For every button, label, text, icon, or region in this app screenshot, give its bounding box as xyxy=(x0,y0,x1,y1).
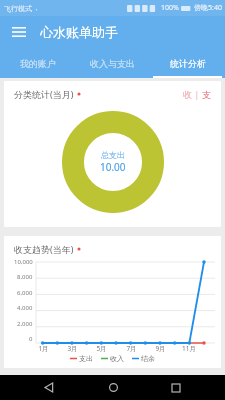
button[interactable]: 我的账户 xyxy=(0,48,75,78)
staticText: | xyxy=(192,88,202,100)
button[interactable]: Back xyxy=(34,375,64,400)
staticText: 2,000 xyxy=(17,320,33,328)
staticText: 1月 xyxy=(38,344,49,353)
staticText: 分类统计(当月) xyxy=(14,88,74,100)
staticText: 我的账户 xyxy=(20,58,56,69)
staticText: 总支出 xyxy=(101,150,125,160)
staticText: 7月 xyxy=(126,344,137,353)
staticText: 支 xyxy=(202,89,211,100)
staticText: 10.00 xyxy=(100,160,126,174)
staticText: 收支趋势(当年) xyxy=(14,243,74,255)
staticText: 心水账单助手 xyxy=(40,24,118,40)
staticText: 傍晚5:40 xyxy=(194,3,222,13)
staticText: 6,000 xyxy=(17,289,33,297)
staticText: 100% xyxy=(161,3,179,13)
staticText: 收入与支出 xyxy=(90,58,135,69)
staticText: 10,000 xyxy=(14,258,33,266)
button[interactable]: 统计分析 xyxy=(150,48,225,78)
staticText: 4,000 xyxy=(17,304,33,312)
staticText: 11月 xyxy=(182,344,196,353)
staticText: 统计分析 xyxy=(170,58,206,69)
staticText: 收 xyxy=(183,89,192,100)
staticText: 结余 xyxy=(141,354,155,363)
button[interactable]: Home xyxy=(98,375,128,400)
staticText: 飞行模式 xyxy=(4,4,32,13)
button[interactable]: 收入与支出 xyxy=(75,48,150,78)
staticText: 0 xyxy=(29,335,33,343)
button[interactable]: Menu xyxy=(8,21,30,43)
button[interactable]: Recents xyxy=(161,375,191,400)
staticText: 8,000 xyxy=(17,273,33,281)
staticText: 收入 xyxy=(110,354,124,363)
staticText: 3月 xyxy=(67,344,78,353)
button[interactable]: 收 xyxy=(183,88,211,100)
staticText: 支出 xyxy=(79,354,93,363)
staticText: 9月 xyxy=(155,344,166,353)
staticText: 5月 xyxy=(96,344,107,353)
